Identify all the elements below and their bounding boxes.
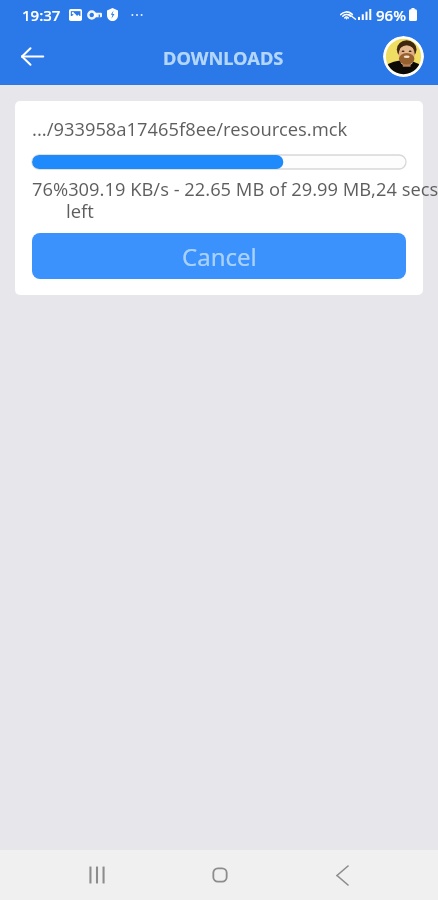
button[interactable]: Profile [383,36,424,77]
button[interactable]: Cancel [32,233,406,279]
staticText: left [66,198,94,223]
staticText: 96% [376,5,406,25]
staticText: .../933958a17465f8ee/resources.mck [32,116,348,141]
button[interactable]: Back [11,35,53,77]
staticText: Cancel [182,240,257,273]
staticText: 76%309.19 KB/s - 22.65 MB of 29.99 MB,24… [32,176,438,201]
button[interactable]: Home [186,850,253,900]
staticText: 19:37 [22,5,61,25]
staticText: DOWNLOADS [163,45,284,70]
button[interactable]: Back [309,850,376,900]
button[interactable]: Recent apps [63,850,130,900]
